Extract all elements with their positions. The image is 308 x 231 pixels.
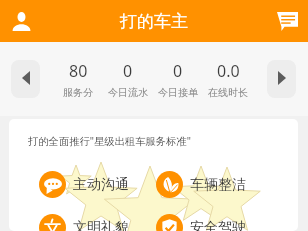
staticText: 今日接单	[158, 86, 198, 99]
staticText: 在线时长	[208, 86, 248, 99]
button[interactable]: 车辆整洁	[156, 171, 246, 198]
staticText: 今日流水	[108, 86, 148, 99]
button[interactable]: Previous	[11, 60, 40, 98]
button[interactable]: Next	[267, 60, 296, 98]
staticText: 服务分	[63, 86, 93, 99]
button[interactable]: 文明礼貌	[39, 214, 129, 231]
button[interactable]: Messages	[267, 0, 308, 42]
button[interactable]: 0	[103, 60, 153, 99]
button[interactable]: 安全驾驶	[156, 214, 246, 231]
staticText: 打的全面推行"星级出租车服务标准"	[28, 134, 191, 148]
staticText: 主动沟通	[73, 176, 129, 194]
staticText: 80	[69, 60, 88, 82]
staticText: 0	[123, 60, 133, 82]
staticText: 安全驾驶	[190, 219, 246, 231]
button[interactable]: 0.0	[203, 60, 253, 99]
button[interactable]: 0	[153, 60, 203, 99]
staticText: 车辆整洁	[190, 176, 246, 194]
staticText: 文明礼貌	[73, 219, 129, 231]
button[interactable]: 主动沟通	[39, 171, 129, 198]
staticText: 0.0	[217, 60, 240, 82]
staticText: 打的车主	[120, 11, 188, 32]
staticText: 0	[173, 60, 183, 82]
button[interactable]: Profile	[0, 0, 42, 42]
button[interactable]: 80	[53, 60, 103, 99]
